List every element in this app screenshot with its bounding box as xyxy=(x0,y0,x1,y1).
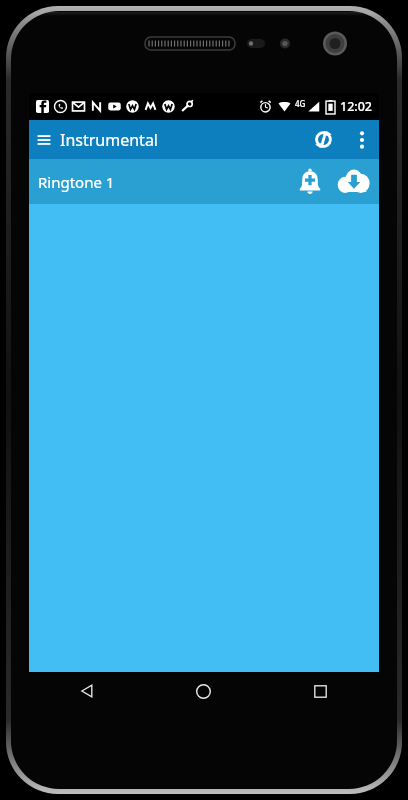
button[interactable]: Set as ringtone xyxy=(289,159,331,204)
button[interactable]: Home xyxy=(145,672,262,710)
button[interactable]: Back xyxy=(29,672,145,710)
button[interactable]: Recent apps xyxy=(262,672,379,710)
staticText: Instrumental xyxy=(60,129,159,151)
button[interactable]: Refresh xyxy=(301,120,345,159)
button[interactable]: More options xyxy=(345,120,379,159)
staticText: 12:02 xyxy=(340,98,373,115)
button[interactable]: Download xyxy=(331,159,377,204)
staticText: 4G xyxy=(295,98,306,109)
button[interactable]: Ringtone 1 xyxy=(29,159,379,204)
staticText: Ringtone 1 xyxy=(38,172,115,192)
button[interactable]: Instrumental xyxy=(29,120,301,159)
